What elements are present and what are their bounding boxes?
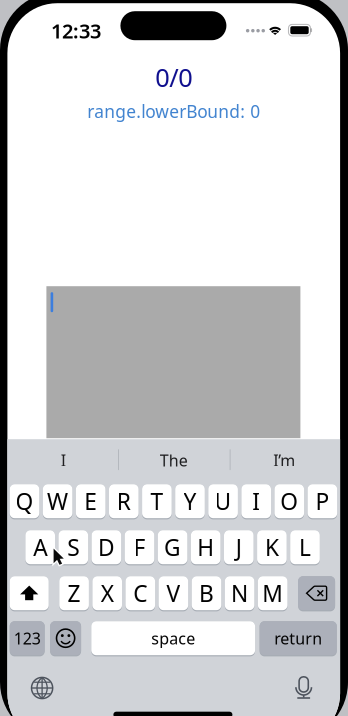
button[interactable]: O xyxy=(274,483,304,519)
staticText: I xyxy=(61,450,66,471)
button[interactable]: R xyxy=(109,483,139,519)
staticText: F xyxy=(133,532,145,562)
staticText: B xyxy=(199,578,214,608)
button[interactable] xyxy=(10,575,49,611)
button[interactable]: Q xyxy=(10,483,39,519)
staticText: Y xyxy=(183,486,196,516)
staticText: X xyxy=(101,578,114,608)
staticText: I xyxy=(252,486,260,516)
button[interactable]: M xyxy=(258,575,287,611)
button[interactable]: L xyxy=(290,529,320,565)
staticText: K xyxy=(265,532,279,562)
button[interactable]: I’m xyxy=(229,441,340,479)
staticText: 123 xyxy=(14,628,41,649)
button[interactable] xyxy=(50,620,81,656)
staticText: I’m xyxy=(273,450,295,471)
button[interactable]: A xyxy=(25,529,55,565)
button[interactable]: U xyxy=(208,483,238,519)
button[interactable]: K xyxy=(257,529,287,565)
button[interactable]: B xyxy=(192,575,221,611)
button[interactable]: space xyxy=(91,620,255,656)
staticText: S xyxy=(67,532,79,562)
staticText: P xyxy=(315,486,329,516)
button[interactable]: S xyxy=(58,529,88,565)
staticText: range.lowerBound: 0 xyxy=(87,100,260,123)
staticText: W xyxy=(47,486,68,516)
button[interactable]: P xyxy=(308,483,337,519)
staticText: O xyxy=(280,486,298,516)
staticText: D xyxy=(98,532,115,562)
button[interactable]: Next keyboard xyxy=(31,677,53,699)
button[interactable]: T xyxy=(142,483,172,519)
button[interactable]: W xyxy=(43,483,72,519)
staticText: T xyxy=(150,486,163,516)
button[interactable]: F xyxy=(125,529,154,565)
button[interactable]: return xyxy=(260,620,337,656)
staticText: return xyxy=(274,628,322,649)
button[interactable]: D xyxy=(92,529,121,565)
staticText: V xyxy=(166,578,180,608)
button[interactable]: Dictate xyxy=(294,675,314,699)
button[interactable]: The xyxy=(118,441,229,479)
staticText: R xyxy=(117,486,131,516)
button[interactable] xyxy=(298,575,335,611)
staticText: H xyxy=(197,532,214,562)
staticText: 12:33 xyxy=(51,17,101,44)
button[interactable]: H xyxy=(191,529,220,565)
staticText: M xyxy=(262,578,283,608)
button[interactable]: Y xyxy=(175,483,205,519)
staticText: Z xyxy=(68,578,81,608)
staticText: N xyxy=(231,578,248,608)
staticText: The xyxy=(160,450,188,471)
button[interactable]: 123 xyxy=(10,620,45,656)
staticText: E xyxy=(84,486,97,516)
button[interactable]: C xyxy=(125,575,155,611)
staticText: A xyxy=(33,532,47,562)
staticText: space xyxy=(151,628,195,649)
button[interactable]: I xyxy=(8,441,118,479)
button[interactable]: J xyxy=(224,529,254,565)
button[interactable]: N xyxy=(225,575,254,611)
staticText: Q xyxy=(15,486,33,516)
button[interactable]: X xyxy=(92,575,122,611)
button[interactable]: I xyxy=(241,483,271,519)
staticText: G xyxy=(164,532,181,562)
button[interactable]: Z xyxy=(59,575,89,611)
staticText: L xyxy=(299,532,311,562)
staticText: C xyxy=(133,578,147,608)
staticText: U xyxy=(215,486,232,516)
button[interactable]: G xyxy=(158,529,187,565)
button[interactable]: V xyxy=(159,575,188,611)
button[interactable]: E xyxy=(76,483,105,519)
staticText: J xyxy=(236,532,242,562)
staticText: 0/0 xyxy=(155,60,192,94)
